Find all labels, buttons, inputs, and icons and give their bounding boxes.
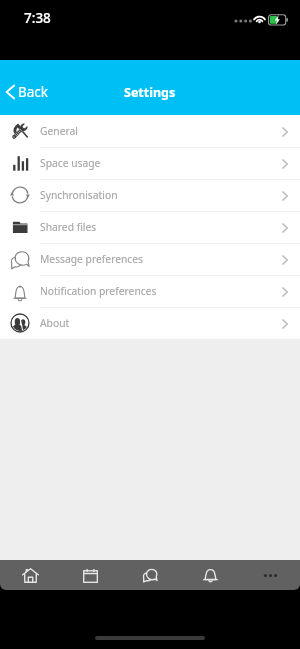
staticText: General: [40, 124, 78, 138]
button[interactable]: Calendar: [60, 560, 120, 590]
button[interactable]: General: [0, 115, 300, 147]
staticText: Back: [18, 83, 49, 101]
staticText: About: [40, 316, 70, 330]
button[interactable]: Message preferences: [0, 243, 300, 275]
button[interactable]: Notifications: [180, 560, 240, 590]
staticText: Shared files: [40, 220, 97, 234]
staticText: Synchronisation: [40, 188, 118, 202]
button[interactable]: Space usage: [0, 147, 300, 179]
staticText: 7:38: [24, 9, 51, 27]
staticText: Settings: [124, 84, 176, 101]
button[interactable]: Notification preferences: [0, 275, 300, 307]
button[interactable]: About: [0, 307, 300, 339]
button[interactable]: Messages: [120, 560, 180, 590]
button[interactable]: Shared files: [0, 211, 300, 243]
button[interactable]: Back: [0, 71, 61, 105]
staticText: Space usage: [40, 156, 101, 170]
staticText: Message preferences: [40, 252, 144, 266]
button[interactable]: Home: [0, 560, 60, 590]
staticText: Notification preferences: [40, 284, 157, 298]
button[interactable]: Synchronisation: [0, 179, 300, 211]
button[interactable]: More: [240, 560, 300, 590]
